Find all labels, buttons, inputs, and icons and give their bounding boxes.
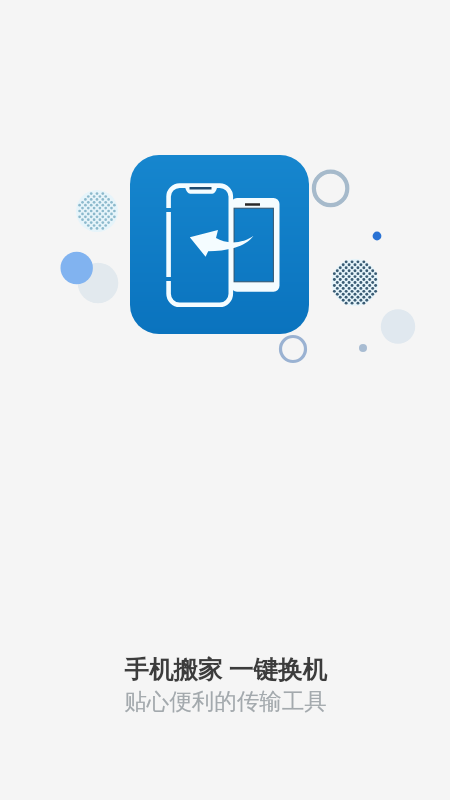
staticText: 贴心便利的传输工具 [124,687,327,715]
button[interactable]: Phone transfer app icon [130,155,309,334]
staticText: 手机搬家 一键换机 [124,652,327,685]
